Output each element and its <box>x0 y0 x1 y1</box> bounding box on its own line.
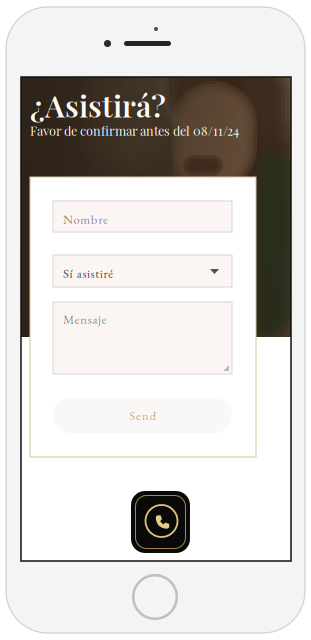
staticText: Nombre <box>63 211 108 227</box>
button[interactable]: Send <box>53 398 232 433</box>
button[interactable]: WhatsApp <box>131 491 190 553</box>
staticText: Send <box>129 407 156 424</box>
button[interactable]: Sí asistiré <box>53 255 232 287</box>
staticText: ¿Asistirá? <box>30 85 166 125</box>
staticText: Sí asistiré <box>63 265 113 281</box>
staticText: Favor de confirmar antes del 08/11/24 <box>30 122 239 139</box>
staticText: Mensaje <box>63 311 107 327</box>
